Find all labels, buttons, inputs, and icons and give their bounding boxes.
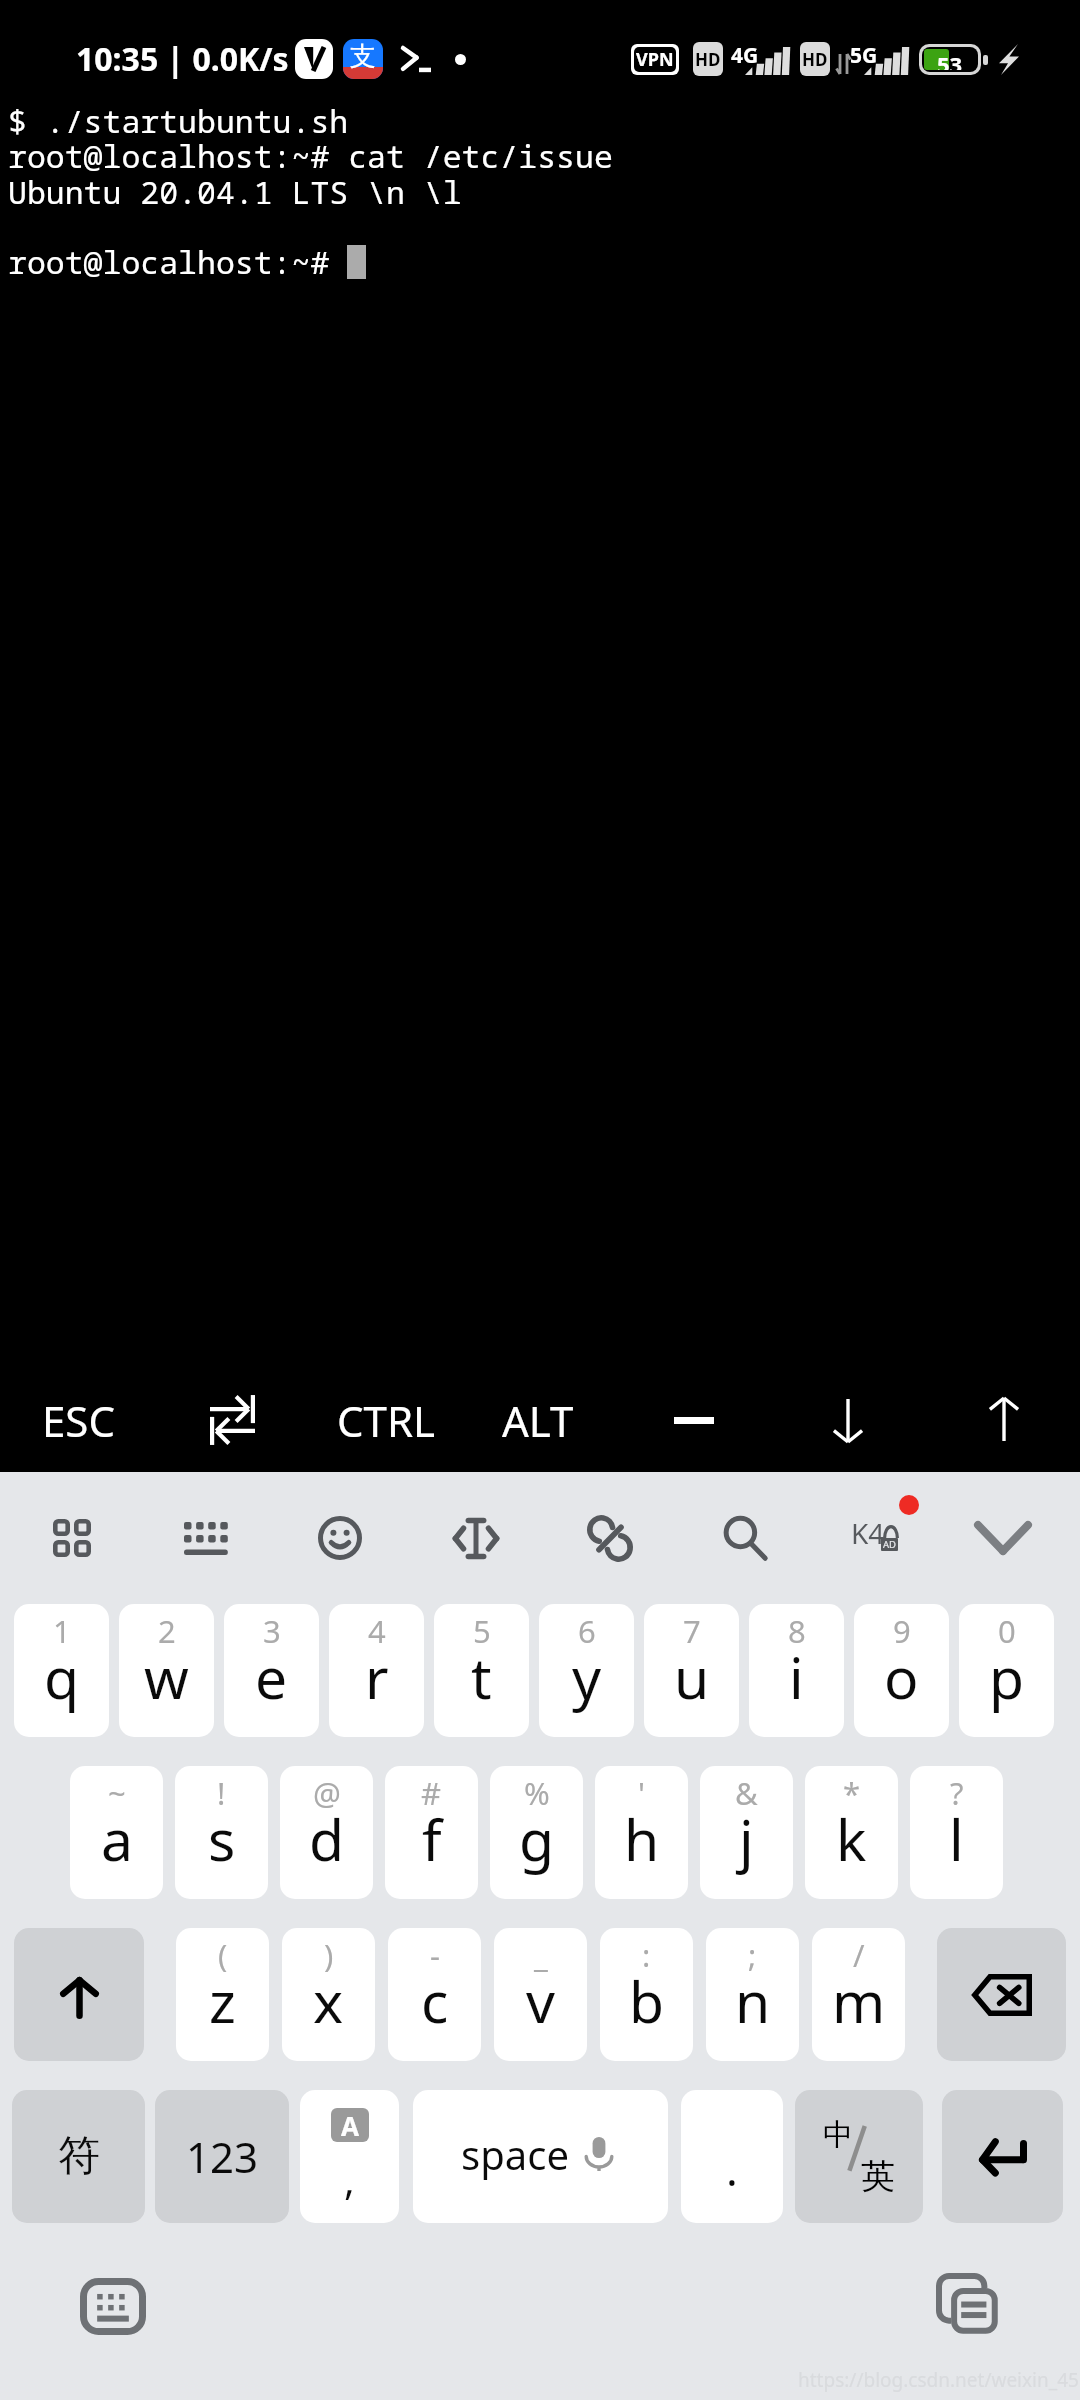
button[interactable]: ~ bbox=[70, 1766, 163, 1899]
staticText: _ bbox=[534, 1934, 548, 1976]
button[interactable]: Tab bbox=[164, 1374, 300, 1466]
button[interactable]: : bbox=[600, 1928, 693, 2061]
staticText: ) bbox=[324, 1934, 334, 1976]
staticText: x bbox=[313, 1962, 344, 2040]
button[interactable]: Keyboard layout bbox=[140, 1478, 272, 1598]
staticText: 9 bbox=[893, 1610, 911, 1652]
staticText: z bbox=[209, 1962, 236, 2040]
button[interactable]: Period bbox=[681, 2090, 783, 2223]
button[interactable]: * bbox=[805, 1766, 898, 1899]
button[interactable]: Arrow up bbox=[936, 1374, 1072, 1466]
button[interactable]: Clipboard bbox=[912, 2251, 1022, 2357]
staticText: i bbox=[789, 1638, 804, 1716]
staticText: ' bbox=[638, 1772, 645, 1814]
button[interactable]: 6 bbox=[539, 1604, 634, 1737]
staticText: * bbox=[843, 1772, 861, 1814]
staticText: e bbox=[255, 1638, 288, 1716]
staticText: m bbox=[832, 1962, 886, 2040]
button[interactable]: ( bbox=[176, 1928, 269, 2061]
button[interactable]: 符 bbox=[12, 2090, 145, 2223]
staticText: 123 bbox=[186, 2128, 259, 2185]
button[interactable]: Advertisement bbox=[808, 1478, 940, 1598]
button[interactable]: ? bbox=[910, 1766, 1003, 1899]
staticText: / bbox=[853, 1934, 865, 1976]
staticText: v bbox=[526, 1962, 555, 2040]
staticText: t bbox=[471, 1638, 492, 1716]
button[interactable]: 7 bbox=[644, 1604, 739, 1737]
staticText: ESC bbox=[42, 1392, 115, 1449]
staticText: u bbox=[674, 1638, 710, 1716]
button[interactable]: Comma bbox=[300, 2090, 399, 2223]
staticText: # bbox=[421, 1772, 442, 1814]
button[interactable]: % bbox=[490, 1766, 583, 1899]
staticText: k bbox=[836, 1800, 867, 1878]
button[interactable]: - bbox=[388, 1928, 481, 2061]
staticText: ALT bbox=[502, 1392, 574, 1449]
staticText: % bbox=[524, 1772, 550, 1814]
staticText: ! bbox=[217, 1772, 226, 1814]
button[interactable]: # bbox=[385, 1766, 478, 1899]
button[interactable]: 3 bbox=[224, 1604, 319, 1737]
button[interactable]: ; bbox=[706, 1928, 799, 2061]
staticText: l bbox=[949, 1800, 964, 1878]
staticText: d bbox=[309, 1800, 345, 1878]
staticText: 符 bbox=[58, 2130, 100, 2183]
staticText: a bbox=[101, 1800, 133, 1878]
staticText: K4 bbox=[851, 1514, 885, 1552]
button[interactable]: Search bbox=[679, 1478, 811, 1598]
button[interactable]: Apps bbox=[6, 1478, 138, 1598]
staticText: . bbox=[726, 2139, 738, 2199]
staticText: j bbox=[739, 1800, 754, 1878]
staticText: h bbox=[624, 1800, 660, 1878]
staticText: 4 bbox=[368, 1610, 386, 1652]
button[interactable]: Hide keyboard bbox=[937, 1478, 1069, 1598]
staticText: https://blog.csdn.net/weixin_45579994 bbox=[798, 2367, 1080, 2393]
button[interactable]: & bbox=[700, 1766, 793, 1899]
button[interactable]: Clipboard link bbox=[544, 1478, 676, 1598]
button[interactable]: @ bbox=[280, 1766, 373, 1899]
button[interactable]: ! bbox=[175, 1766, 268, 1899]
button[interactable]: 0 bbox=[959, 1604, 1054, 1737]
staticText: ; bbox=[748, 1934, 757, 1976]
button[interactable]: 1 bbox=[14, 1604, 109, 1737]
staticText: 5G bbox=[850, 41, 878, 70]
staticText: ~ bbox=[108, 1772, 126, 1814]
staticText: 7 bbox=[683, 1610, 701, 1652]
staticText: A bbox=[341, 2108, 359, 2142]
button[interactable]: Emoji bbox=[274, 1478, 406, 1598]
button[interactable]: Escape bbox=[10, 1374, 146, 1466]
staticText: y bbox=[572, 1638, 602, 1716]
button[interactable]: Text cursor bbox=[410, 1478, 542, 1598]
button[interactable]: 123 bbox=[155, 2090, 289, 2223]
button[interactable]: 4 bbox=[329, 1604, 424, 1737]
button[interactable]: Control bbox=[318, 1374, 454, 1466]
staticText: , bbox=[344, 2152, 355, 2206]
button[interactable]: 5 bbox=[434, 1604, 529, 1737]
staticText: Ubuntu 20.04.1 LTS \n \l bbox=[8, 170, 462, 213]
button[interactable]: 2 bbox=[119, 1604, 214, 1737]
button[interactable]: Alt bbox=[470, 1374, 606, 1466]
button[interactable]: Enter bbox=[942, 2090, 1063, 2223]
button[interactable]: ) bbox=[282, 1928, 375, 2061]
button[interactable]: Arrow down bbox=[780, 1374, 916, 1466]
button[interactable]: Minimize bbox=[626, 1374, 762, 1466]
staticText: HD bbox=[695, 48, 721, 71]
staticText: 6 bbox=[578, 1610, 596, 1652]
staticText: n bbox=[735, 1962, 771, 2040]
staticText: space bbox=[461, 2127, 569, 2181]
button[interactable]: 8 bbox=[749, 1604, 844, 1737]
button[interactable]: / bbox=[812, 1928, 905, 2061]
button[interactable]: Shift bbox=[14, 1928, 144, 2061]
button[interactable]: Switch Chinese English bbox=[795, 2090, 923, 2223]
staticText: f bbox=[422, 1800, 442, 1878]
button[interactable]: Switch keyboard bbox=[56, 2253, 170, 2359]
staticText: p bbox=[989, 1638, 1025, 1716]
staticText: 4G bbox=[731, 41, 759, 70]
button[interactable]: _ bbox=[494, 1928, 587, 2061]
button[interactable]: ' bbox=[595, 1766, 688, 1899]
staticText: root@localhost:~# bbox=[8, 240, 330, 283]
button[interactable]: space bbox=[413, 2090, 668, 2223]
staticText: 5 bbox=[473, 1610, 491, 1652]
button[interactable]: 9 bbox=[854, 1604, 949, 1737]
button[interactable]: Backspace bbox=[937, 1928, 1066, 2061]
